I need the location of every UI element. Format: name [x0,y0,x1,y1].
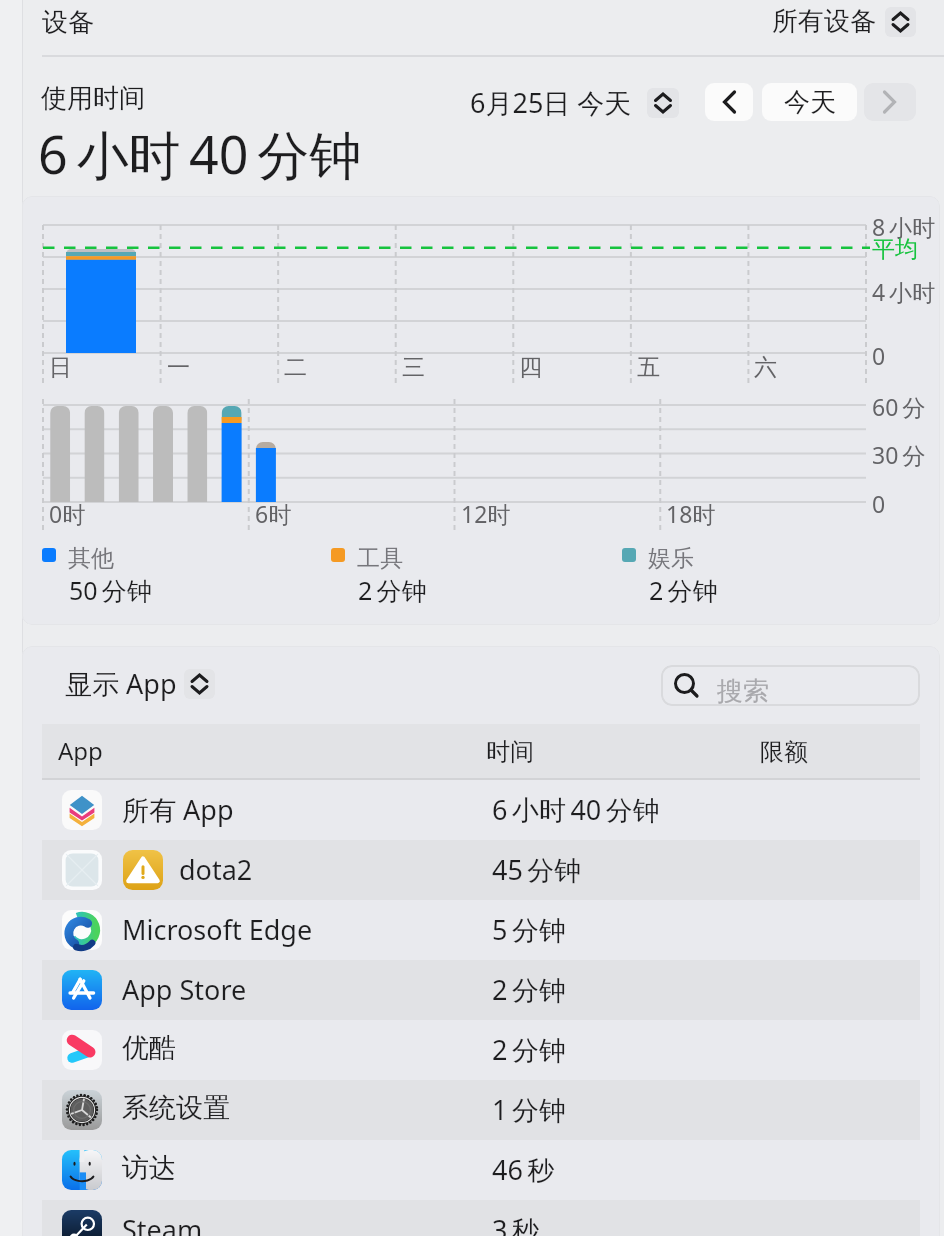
staticText: 其他 [68,544,114,573]
staticText: 三 [402,353,425,382]
staticText: 六 [754,353,777,382]
button[interactable]: 所有设备 [772,5,916,38]
staticText: 日 [49,353,72,382]
staticText: 优酷 [122,1031,176,1065]
staticText: Microsoft Edge [122,911,313,948]
staticText: App Store [122,971,247,1008]
button[interactable]: 系统设置 [42,1080,920,1140]
staticText: 平均 [872,235,918,264]
button[interactable]: 设备 [23,0,944,57]
staticText: 46 秒 [492,1151,555,1188]
button[interactable]: Steam [42,1200,920,1236]
button[interactable]: 其他 [42,544,125,578]
staticText: 12时 [461,498,511,529]
staticText: 45 分钟 [492,851,582,888]
button[interactable]: 优酷 [42,1020,920,1080]
staticText: 3 秒 [492,1211,539,1236]
staticText: 6月25日 今天 [470,84,632,121]
staticText: 0 [872,488,886,519]
staticText: 四 [519,353,542,382]
staticText: 18时 [666,498,716,529]
staticText: 二 [284,353,307,382]
button[interactable]: dota2 [42,840,920,900]
staticText: 工具 [357,544,403,573]
staticText: 1 分钟 [492,1091,566,1128]
staticText: 0 [872,340,886,371]
staticText: 30 分 [872,439,926,470]
staticText: 时间 [486,737,534,767]
staticText: App [58,734,103,767]
staticText: 2 分钟 [492,1031,566,1068]
staticText: 所有 App [122,791,234,828]
staticText: 50 分钟 [69,573,152,607]
button[interactable]: 今天 [762,83,857,121]
staticText: 8 小时 [872,211,935,242]
button[interactable]: 所有 App [42,780,920,840]
staticText: 60 分 [872,391,926,422]
button[interactable]: 选择日期 [647,88,679,118]
button[interactable]: App Store [42,960,920,1020]
staticText: 限额 [760,737,808,767]
staticText: Steam [122,1211,203,1236]
staticText: dota2 [179,851,253,888]
staticText: 2 分钟 [492,971,566,1008]
staticText: 2 分钟 [649,573,718,607]
staticText: 0时 [49,498,86,529]
staticText: 设备 [42,6,94,39]
staticText: 6时 [255,498,292,529]
staticText: 显示 App [65,665,177,702]
staticText: 6 小时 40 分钟 [492,791,660,828]
button[interactable]: 搜索 [661,665,920,706]
button[interactable]: 上一天 [705,83,753,121]
staticText: 五 [637,353,660,382]
staticText: 系统设置 [122,1091,230,1125]
button[interactable]: 下一天 [864,83,916,121]
staticText: 今天 [784,86,836,119]
staticText: 5 分钟 [492,911,566,948]
staticText: 6 小时 40 分钟 [38,118,362,189]
staticText: 4 小时 [872,276,935,307]
staticText: 搜索 [717,675,769,706]
button[interactable]: 访达 [42,1140,920,1200]
staticText: 娱乐 [648,544,694,573]
button[interactable]: 娱乐 [622,544,691,578]
staticText: 所有设备 [772,5,876,38]
staticText: 2 分钟 [358,573,427,607]
staticText: 访达 [122,1151,176,1185]
staticText: 使用时间 [41,82,145,115]
button[interactable]: Microsoft Edge [42,900,920,960]
button[interactable]: 工具 [331,544,400,578]
button[interactable]: 显示 App [65,665,215,702]
staticText: 一 [167,353,190,382]
